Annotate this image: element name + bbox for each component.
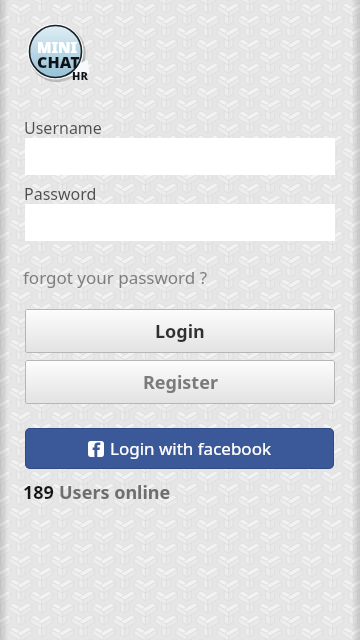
staticText: Users online — [59, 480, 171, 505]
staticText: HR — [72, 68, 88, 83]
staticText: forgot your password ? — [23, 266, 208, 289]
staticText: MINI — [37, 37, 78, 57]
staticText: Username — [24, 117, 102, 139]
button[interactable]: Login — [25, 309, 335, 353]
button[interactable]: forgot your password ? — [23, 266, 208, 289]
staticText: 189 — [23, 480, 59, 505]
staticText: Register — [143, 370, 218, 395]
staticText: Password — [24, 183, 97, 205]
staticText: CHAT — [37, 51, 80, 73]
button[interactable]: Register — [25, 360, 335, 404]
staticText: Login — [155, 319, 205, 344]
button[interactable]: Login with facebook — [25, 428, 334, 469]
staticText: Login with facebook — [110, 437, 272, 460]
